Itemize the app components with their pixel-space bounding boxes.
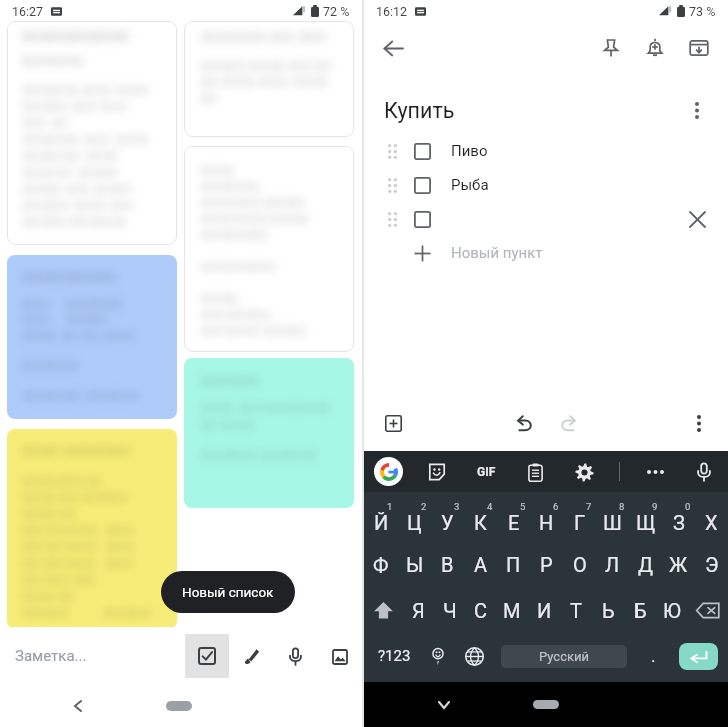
button[interactable]: Новый список xyxy=(161,571,295,613)
button[interactable]: Home xyxy=(166,701,192,711)
button[interactable]: Ш xyxy=(596,495,629,541)
button[interactable]: С xyxy=(465,587,496,633)
staticText: 2 xyxy=(421,501,427,512)
button[interactable]: Ц xyxy=(398,495,431,541)
button[interactable]: Пиво xyxy=(388,134,712,168)
staticText: . xyxy=(651,646,656,666)
button[interactable]: Й xyxy=(364,495,398,541)
staticText: Ы xyxy=(406,553,424,576)
button[interactable]: Ю xyxy=(656,587,688,633)
button[interactable]: О xyxy=(563,541,596,587)
button[interactable] xyxy=(184,21,354,137)
staticText: Щ xyxy=(636,511,656,534)
button[interactable]: Б xyxy=(624,587,656,633)
button[interactable]: Shift xyxy=(364,587,403,633)
button[interactable]: Pin note xyxy=(590,27,632,69)
staticText: Купить xyxy=(384,98,455,123)
button[interactable]: В xyxy=(431,541,464,587)
button[interactable]: Русский xyxy=(501,645,627,668)
button[interactable]: Новый пункт xyxy=(388,236,728,270)
button[interactable]: Э xyxy=(695,541,728,587)
button[interactable]: М xyxy=(496,587,528,633)
button[interactable]: Ь xyxy=(592,587,624,633)
staticText: Ж xyxy=(669,553,688,576)
button[interactable]: Settings xyxy=(570,458,598,486)
staticText: У xyxy=(441,511,454,534)
staticText: А xyxy=(474,553,488,576)
button[interactable]: Voice input xyxy=(690,458,718,486)
button[interactable]: New drawing xyxy=(234,639,269,674)
button[interactable]: Delete item xyxy=(388,202,712,236)
button[interactable]: Г xyxy=(563,495,596,541)
button[interactable]: Redo xyxy=(551,406,585,440)
button[interactable]: П xyxy=(497,541,530,587)
button[interactable]: New voice note xyxy=(278,639,313,674)
button[interactable]: Ы xyxy=(398,541,431,587)
button[interactable]: Рыба xyxy=(388,168,712,202)
button[interactable]: More options xyxy=(682,406,716,440)
staticText: Русский xyxy=(539,649,590,664)
button[interactable] xyxy=(7,255,177,419)
button[interactable]: . xyxy=(638,633,668,679)
button[interactable]: У xyxy=(431,495,464,541)
staticText: Д xyxy=(638,553,654,576)
button[interactable]: Delete item xyxy=(682,204,712,234)
button[interactable]: Л xyxy=(596,541,629,587)
button[interactable] xyxy=(184,146,354,352)
button[interactable]: Д xyxy=(629,541,662,587)
staticText: Э xyxy=(705,553,719,576)
button[interactable]: Ф xyxy=(364,541,398,587)
button[interactable]: А xyxy=(464,541,497,587)
button[interactable]: Home xyxy=(533,700,559,709)
button[interactable]: Р xyxy=(530,541,563,587)
staticText: И xyxy=(537,599,552,622)
button[interactable]: Щ xyxy=(629,495,662,541)
button[interactable] xyxy=(184,358,354,508)
button[interactable]: Add xyxy=(376,406,410,440)
staticText: 6 xyxy=(553,501,559,512)
button[interactable]: Change language xyxy=(458,633,490,679)
button[interactable]: Emoji xyxy=(422,633,454,679)
staticText: 9 xyxy=(652,501,658,512)
staticText: Ц xyxy=(407,511,422,534)
button[interactable]: Ж xyxy=(662,541,695,587)
button[interactable]: Заметка... xyxy=(15,627,87,685)
button[interactable]: З xyxy=(662,495,695,541)
button[interactable]: Ч xyxy=(434,587,465,633)
staticText: Я xyxy=(412,599,425,622)
button[interactable] xyxy=(7,429,177,629)
staticText: Л xyxy=(605,553,620,576)
button[interactable]: New list xyxy=(185,634,229,678)
button[interactable]: Backspace xyxy=(688,587,728,633)
button[interactable]: Archive xyxy=(678,27,720,69)
button[interactable]: GIF xyxy=(472,458,500,486)
button[interactable]: И xyxy=(528,587,560,633)
button[interactable]: Х xyxy=(695,495,728,541)
button[interactable]: Stickers xyxy=(423,458,451,486)
staticText: К xyxy=(474,511,487,534)
staticText: 8 xyxy=(619,501,625,512)
button[interactable]: Е xyxy=(497,495,530,541)
button[interactable]: Н xyxy=(530,495,563,541)
button[interactable]: Google search xyxy=(374,457,403,486)
staticText: Р xyxy=(540,553,553,576)
button[interactable]: Clipboard xyxy=(521,458,549,486)
button[interactable]: Т xyxy=(560,587,592,633)
button[interactable]: Enter xyxy=(679,643,718,670)
staticText: 16:12 xyxy=(376,4,408,19)
button[interactable]: ?123 xyxy=(372,633,416,679)
button[interactable]: Hide keyboard xyxy=(431,692,457,718)
button[interactable] xyxy=(7,21,177,245)
button[interactable]: New image note xyxy=(322,639,357,674)
button[interactable]: Back xyxy=(64,692,92,720)
staticText: Г xyxy=(574,511,586,534)
button[interactable]: More options xyxy=(641,458,669,486)
staticText: Й xyxy=(374,511,389,534)
button[interactable]: Reminder xyxy=(634,27,676,69)
staticText: Заметка... xyxy=(15,647,87,665)
button[interactable]: Undo xyxy=(508,406,542,440)
button[interactable]: К xyxy=(464,495,497,541)
button[interactable]: Я xyxy=(403,587,434,633)
button[interactable]: More options xyxy=(678,91,716,129)
button[interactable]: Back xyxy=(372,27,414,69)
